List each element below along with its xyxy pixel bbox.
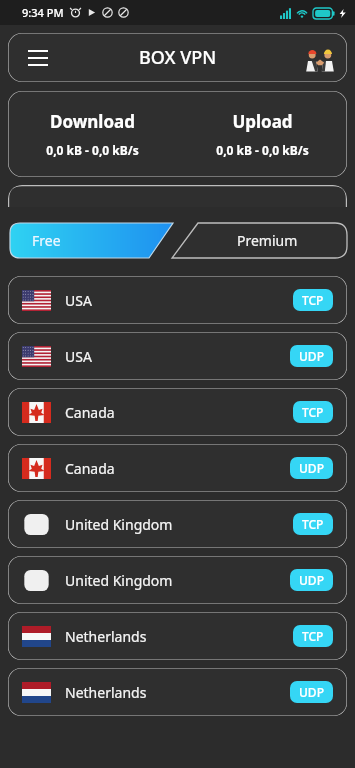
staticText: Netherlands <box>65 627 147 646</box>
staticText: UDP <box>299 684 324 700</box>
button[interactable]: Canada <box>8 388 347 436</box>
button[interactable]: Download <box>8 91 347 177</box>
button[interactable]: Netherlands <box>8 668 347 716</box>
staticText: TCP <box>302 516 324 532</box>
button[interactable]: Account <box>303 41 337 75</box>
staticText: Upload <box>232 110 293 133</box>
staticText: TCP <box>302 292 324 308</box>
button[interactable]: United Kingdom <box>8 500 347 548</box>
staticText: United Kingdom <box>65 571 173 590</box>
staticText: 0,0 kB - 0,0 kB/s <box>46 142 139 158</box>
staticText: 0,0 kB - 0,0 kB/s <box>216 142 309 158</box>
staticText: Canada <box>65 403 115 422</box>
staticText: Canada <box>65 459 115 478</box>
staticText: USA <box>65 291 92 310</box>
staticText: United Kingdom <box>65 515 173 534</box>
staticText: UDP <box>299 348 324 364</box>
button[interactable]: United Kingdom <box>8 556 347 604</box>
staticText: USA <box>65 347 92 366</box>
staticText: TCP <box>302 628 324 644</box>
button[interactable]: Free <box>10 223 173 258</box>
staticText: UDP <box>299 572 324 588</box>
staticText: TCP <box>302 404 324 420</box>
staticText: Download <box>50 110 135 133</box>
button[interactable]: USA <box>8 276 347 324</box>
button[interactable]: Canada <box>8 444 347 492</box>
button[interactable]: USA <box>8 332 347 380</box>
button[interactable]: Premium <box>172 223 347 258</box>
button[interactable]: Netherlands <box>8 612 347 660</box>
button[interactable] <box>8 185 347 207</box>
staticText: BOX VPN <box>139 45 217 70</box>
staticText: 9:34 PM <box>22 5 64 20</box>
staticText: Netherlands <box>65 683 147 702</box>
staticText: Premium <box>237 231 298 250</box>
staticText: Free <box>32 231 61 250</box>
button[interactable]: Open navigation menu <box>20 40 56 76</box>
staticText: UDP <box>299 460 324 476</box>
